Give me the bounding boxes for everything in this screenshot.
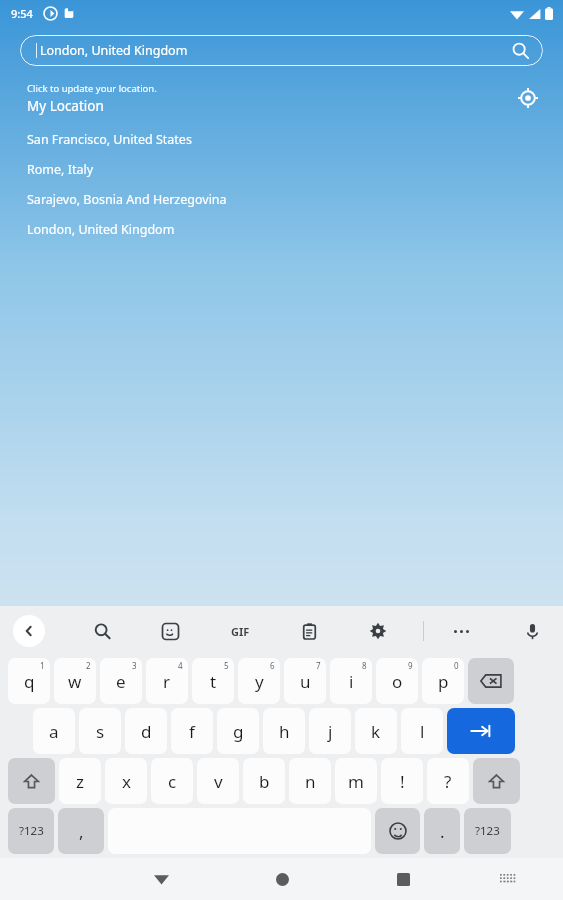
staticText: g <box>233 720 244 743</box>
staticText: 4 <box>178 660 183 671</box>
staticText: London, United Kingdom <box>27 221 175 238</box>
staticText: 1 <box>40 660 45 671</box>
button[interactable]: . <box>424 808 460 854</box>
button[interactable]: Clipboard <box>294 616 324 646</box>
button[interactable]: p <box>422 658 464 704</box>
button[interactable]: f <box>171 708 213 754</box>
button[interactable]: More options <box>445 615 477 647</box>
button[interactable]: r <box>146 658 188 704</box>
staticText: y <box>255 670 264 693</box>
button[interactable]: m <box>335 758 377 804</box>
staticText: 7 <box>316 660 321 671</box>
button[interactable]: k <box>355 708 397 754</box>
staticText: Click to update your location. <box>27 82 157 95</box>
button[interactable]: l <box>401 708 443 754</box>
button[interactable]: h <box>263 708 305 754</box>
button[interactable]: q <box>8 658 50 704</box>
button[interactable]: s <box>79 708 121 754</box>
button[interactable]: c <box>151 758 193 804</box>
button[interactable]: ! <box>381 758 423 804</box>
staticText: x <box>122 770 131 793</box>
button[interactable]: u <box>284 658 326 704</box>
staticText: Sarajevo, Bosnia And Herzegovina <box>27 191 227 208</box>
button[interactable]: ?123 <box>8 808 54 854</box>
button[interactable]: Back <box>13 615 45 647</box>
button[interactable]: o <box>376 658 418 704</box>
staticText: My Location <box>27 97 104 115</box>
button[interactable]: San Francisco, United States <box>0 124 563 154</box>
button[interactable]: Shift <box>473 758 520 804</box>
button[interactable]: Rome, Italy <box>0 154 563 184</box>
staticText: m <box>348 770 364 793</box>
button[interactable]: London, United Kingdom <box>20 35 543 66</box>
button[interactable]: Emoji <box>375 808 420 854</box>
staticText: 0 <box>454 660 459 671</box>
staticText: London, United Kingdom <box>40 42 512 59</box>
button[interactable]: Switch keyboard <box>491 862 525 896</box>
staticText: s <box>96 720 105 743</box>
staticText: e <box>116 670 126 693</box>
button[interactable]: GIF <box>223 614 257 648</box>
button[interactable]: Home <box>265 862 299 896</box>
button[interactable]: Search <box>87 616 117 646</box>
staticText: ! <box>400 770 405 793</box>
staticText: l <box>420 720 425 743</box>
button[interactable]: e <box>100 658 142 704</box>
staticText: 8 <box>362 660 367 671</box>
staticText: 9 <box>408 660 413 671</box>
staticText: f <box>189 720 195 743</box>
staticText: Rome, Italy <box>27 161 94 178</box>
button[interactable]: z <box>59 758 101 804</box>
button[interactable]: Stickers <box>155 616 185 646</box>
staticText: d <box>141 720 152 743</box>
staticText: 6 <box>270 660 275 671</box>
staticText: h <box>279 720 290 743</box>
button[interactable]: i <box>330 658 372 704</box>
button[interactable]: Sarajevo, Bosnia And Herzegovina <box>0 184 563 214</box>
button[interactable]: ? <box>427 758 469 804</box>
staticText: a <box>49 720 59 743</box>
button[interactable]: Settings <box>363 616 393 646</box>
staticText: , <box>79 820 84 843</box>
button[interactable]: b <box>243 758 285 804</box>
button[interactable]: Use current location <box>511 81 545 115</box>
button[interactable]: , <box>58 808 104 854</box>
button[interactable]: y <box>238 658 280 704</box>
button[interactable]: Back <box>144 862 178 896</box>
button[interactable]: Backspace <box>468 658 514 704</box>
staticText: San Francisco, United States <box>27 131 192 148</box>
staticText: u <box>300 670 311 693</box>
button[interactable]: j <box>309 708 351 754</box>
staticText: ?123 <box>19 823 44 839</box>
button[interactable]: Recents <box>386 862 420 896</box>
staticText: ?123 <box>475 823 500 839</box>
button[interactable]: v <box>197 758 239 804</box>
button[interactable]: d <box>125 708 167 754</box>
staticText: 2 <box>86 660 91 671</box>
button[interactable]: Shift <box>8 758 55 804</box>
staticText: 5 <box>224 660 229 671</box>
staticText: 3 <box>132 660 137 671</box>
button[interactable]: g <box>217 708 259 754</box>
button[interactable]: w <box>54 658 96 704</box>
staticText: 9:54 <box>11 6 33 21</box>
staticText: k <box>371 720 381 743</box>
staticText: ? <box>444 770 452 793</box>
staticText: t <box>210 670 217 693</box>
button[interactable]: ?123 <box>464 808 511 854</box>
staticText: . <box>440 820 445 843</box>
button[interactable]: x <box>105 758 147 804</box>
button[interactable]: n <box>289 758 331 804</box>
button[interactable]: Click to update your location. <box>27 82 157 115</box>
button[interactable]: Enter <box>447 708 515 754</box>
button[interactable]: t <box>192 658 234 704</box>
button[interactable]: Voice input <box>517 616 547 646</box>
staticText: j <box>328 720 333 743</box>
staticText: p <box>438 670 449 693</box>
staticText: r <box>163 670 171 693</box>
button[interactable]: a <box>33 708 75 754</box>
staticText: w <box>68 670 82 693</box>
button[interactable]: London, United Kingdom <box>0 214 563 244</box>
staticText: GIF <box>231 624 250 639</box>
